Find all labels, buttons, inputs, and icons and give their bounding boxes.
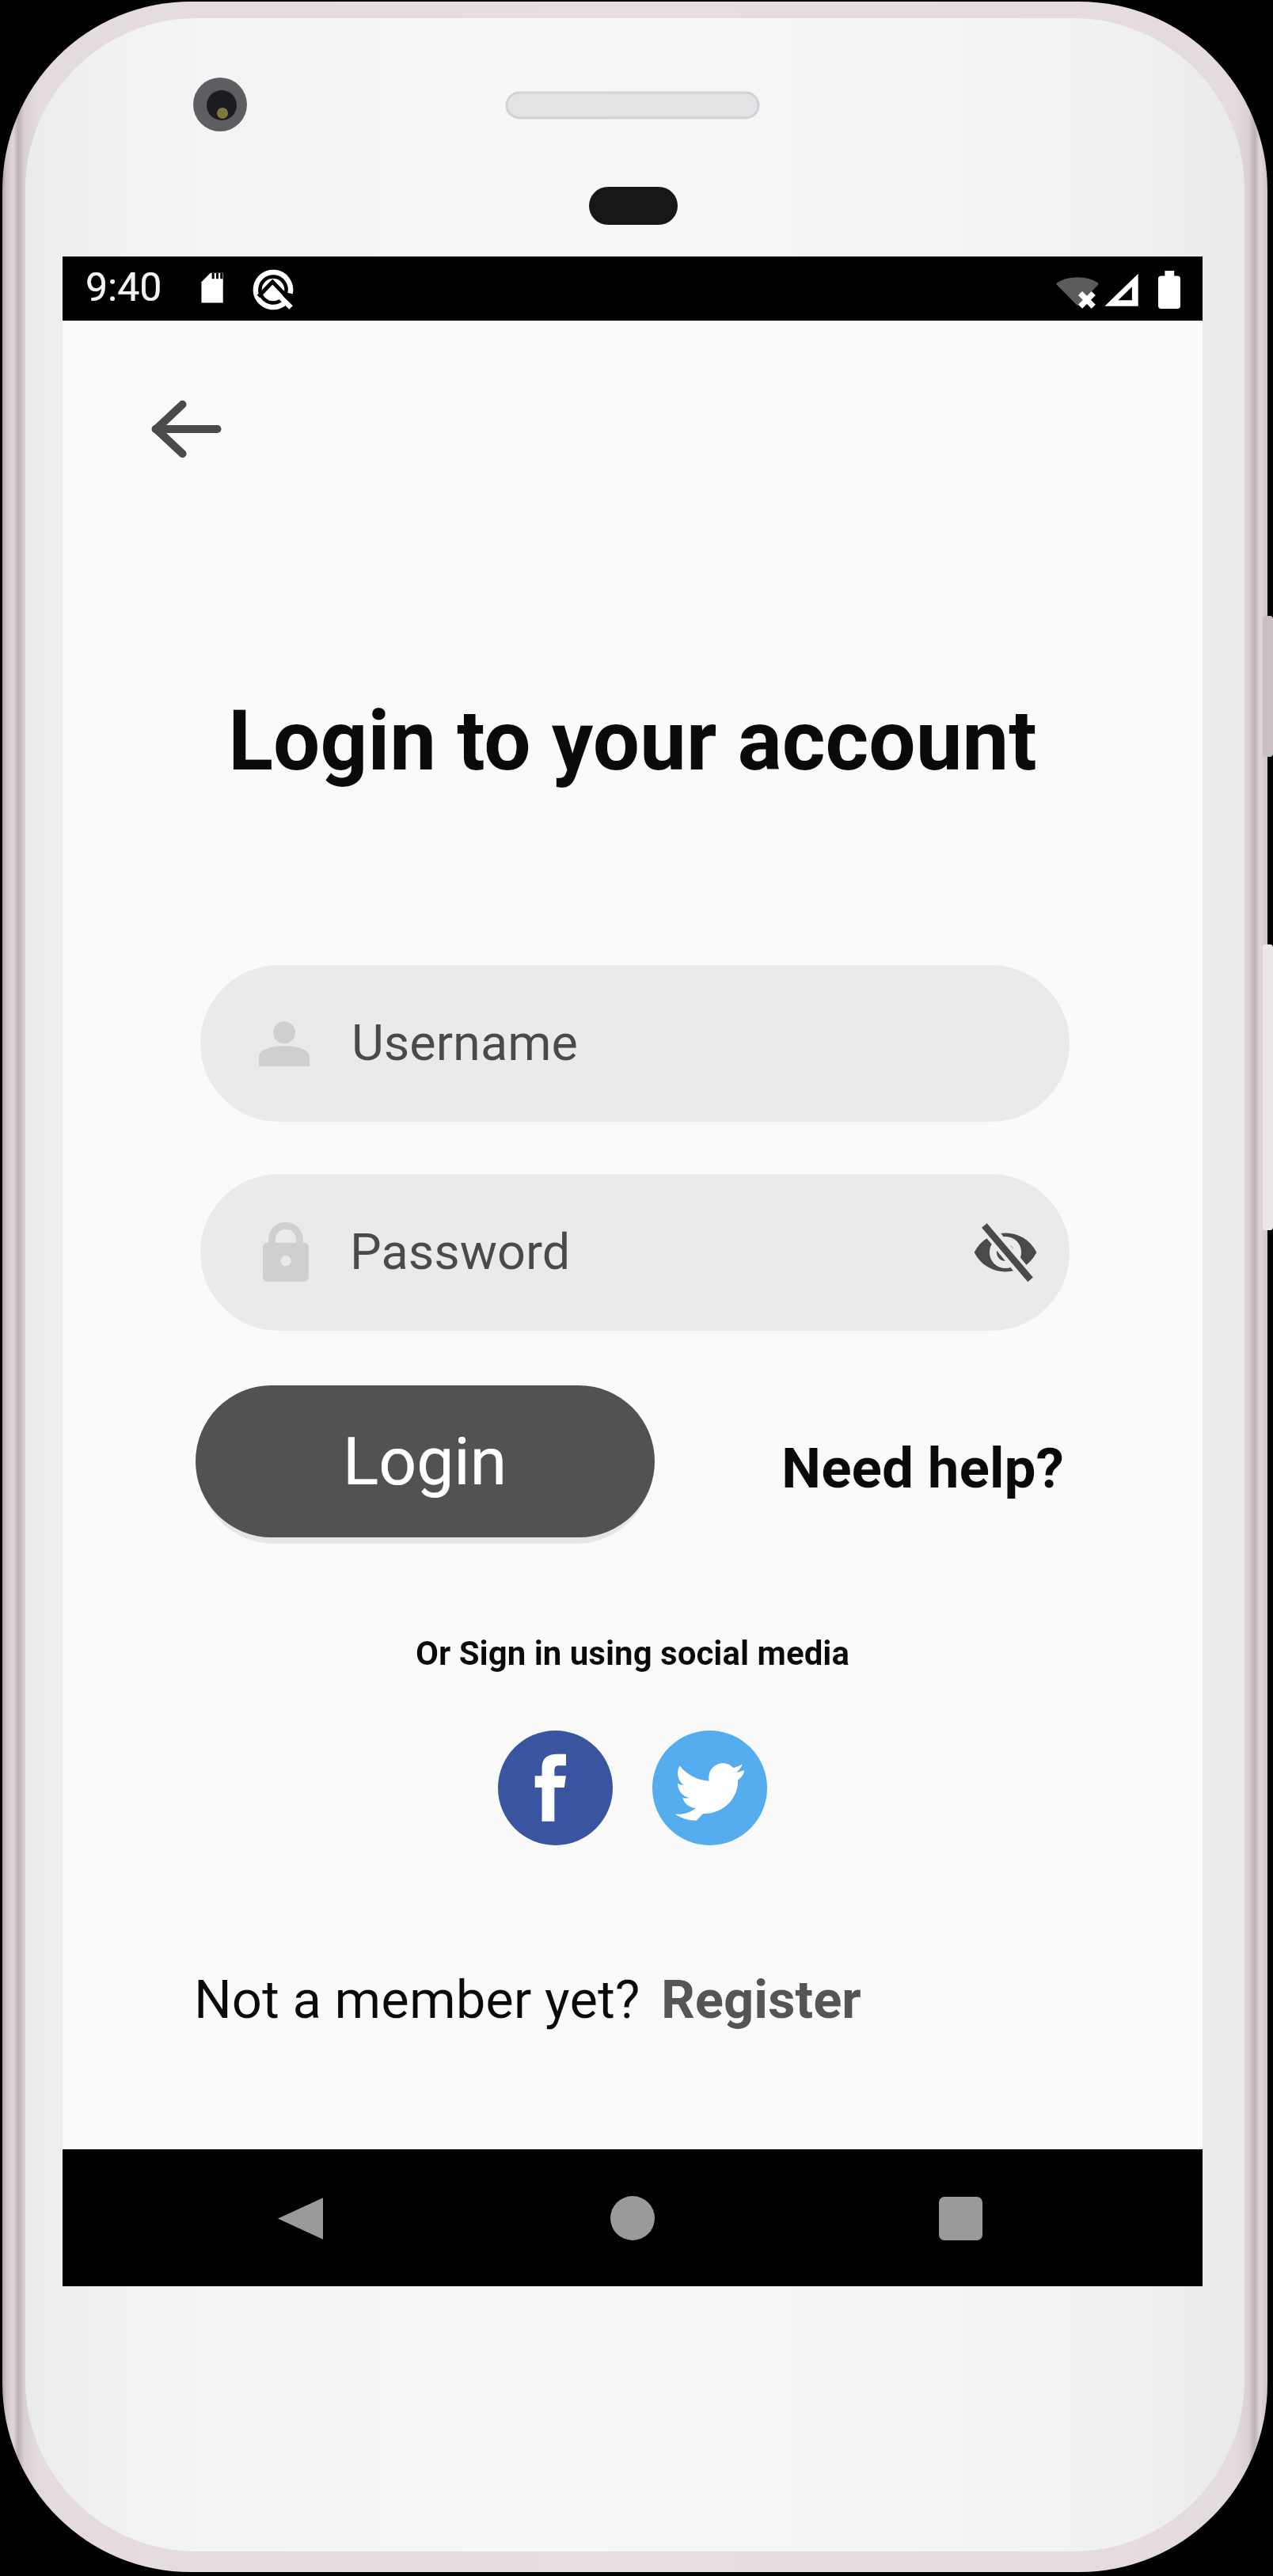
staticText: Not a member yet? xyxy=(194,1969,640,2031)
button[interactable]: Back xyxy=(256,2175,344,2262)
staticText: Register xyxy=(661,1969,861,2031)
button[interactable]: Need help? xyxy=(781,1435,1064,1501)
button[interactable]: Password xyxy=(200,1174,1070,1331)
button[interactable]: Home xyxy=(589,2175,676,2262)
button[interactable]: Register xyxy=(661,1969,861,2031)
button[interactable]: Login xyxy=(196,1385,655,1537)
staticText: Password xyxy=(350,1223,571,1282)
staticText: 9:40 xyxy=(85,264,162,311)
button[interactable]: Show password xyxy=(954,1201,1057,1304)
staticText: Login xyxy=(343,1423,507,1500)
button[interactable]: Back xyxy=(139,382,234,477)
button[interactable]: Recents xyxy=(917,2175,1004,2262)
staticText: Need help? xyxy=(781,1435,1064,1501)
button[interactable]: Username xyxy=(200,965,1070,1122)
staticText: Or Sign in using social media xyxy=(63,1634,1203,1673)
staticText: Login to your account xyxy=(63,693,1203,790)
staticText: Username xyxy=(351,1014,578,1073)
button[interactable]: Sign in with Twitter xyxy=(652,1731,767,1845)
button[interactable]: Sign in with Facebook xyxy=(498,1731,613,1845)
